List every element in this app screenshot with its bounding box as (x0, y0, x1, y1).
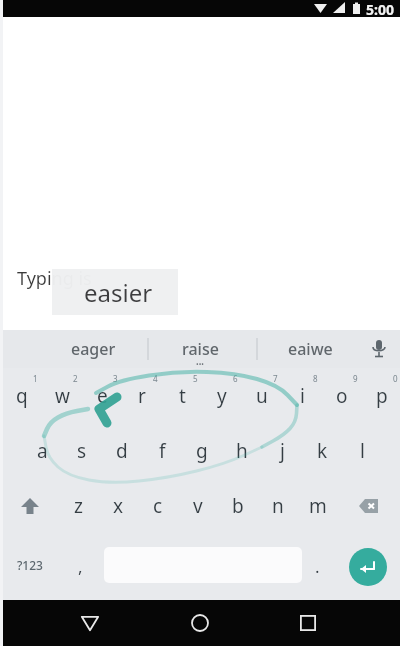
staticText: h (236, 438, 248, 464)
button[interactable]: v (178, 478, 218, 533)
staticText: 1 (33, 373, 38, 384)
staticText: n (272, 493, 284, 519)
staticText: 4 (153, 373, 158, 384)
button[interactable]: q (2, 368, 42, 423)
button[interactable] (10, 478, 50, 533)
button[interactable] (349, 548, 387, 586)
staticText: x (113, 493, 124, 519)
button[interactable]: x (98, 478, 138, 533)
button[interactable] (284, 600, 332, 646)
button[interactable]: raise (150, 330, 250, 368)
button[interactable]: b (218, 478, 258, 533)
staticText: d (116, 438, 128, 464)
button[interactable]: z (58, 478, 98, 533)
button[interactable] (369, 339, 389, 359)
staticText: 6 (233, 373, 238, 384)
staticText: f (159, 438, 166, 464)
button[interactable]: . (297, 539, 337, 594)
button[interactable]: n (258, 478, 298, 533)
button[interactable]: i (282, 368, 322, 423)
staticText: g (196, 438, 208, 464)
staticText: q (16, 383, 28, 409)
staticText: eager (71, 338, 116, 360)
staticText: 5:00 (366, 0, 394, 17)
button[interactable]: h (222, 423, 262, 478)
staticText: raise (182, 338, 219, 360)
staticText: p (376, 383, 388, 409)
button[interactable]: f (142, 423, 182, 478)
button[interactable]: s (62, 423, 102, 478)
button[interactable]: o (322, 368, 362, 423)
button[interactable]: y (202, 368, 242, 423)
button[interactable] (176, 600, 224, 646)
button[interactable]: k (302, 423, 342, 478)
button[interactable]: eaiwe (260, 330, 360, 368)
staticText: eaiwe (288, 338, 333, 360)
staticText: 2 (73, 373, 78, 384)
staticText: 9 (353, 373, 358, 384)
staticText: m (309, 493, 327, 519)
button[interactable]: p (362, 368, 400, 423)
button[interactable]: , (60, 539, 100, 594)
staticText: k (317, 438, 328, 464)
button[interactable] (347, 478, 391, 533)
staticText: s (77, 438, 87, 464)
button[interactable]: c (138, 478, 178, 533)
staticText: b (232, 493, 244, 519)
button[interactable]: w (42, 368, 82, 423)
staticText: 8 (313, 373, 318, 384)
staticText: ?123 (17, 557, 43, 573)
staticText: v (193, 493, 203, 519)
staticText: r (138, 383, 146, 409)
staticText: o (336, 383, 348, 409)
button[interactable]: m (298, 478, 338, 533)
staticText: . (315, 555, 320, 578)
staticText: Typing is (17, 266, 92, 291)
button[interactable]: e (82, 368, 122, 423)
staticText: t (179, 383, 186, 409)
button[interactable]: a (22, 423, 62, 478)
button[interactable]: r (122, 368, 162, 423)
button[interactable]: l (342, 423, 382, 478)
staticText: ••• (196, 360, 204, 370)
button[interactable]: d (102, 423, 142, 478)
button[interactable]: g (182, 423, 222, 478)
staticText: l (360, 438, 365, 464)
staticText: 5 (193, 373, 198, 384)
button[interactable]: eager (43, 330, 143, 368)
staticText: , (78, 555, 83, 578)
staticText: u (256, 383, 268, 409)
staticText: e (97, 383, 108, 409)
staticText: j (280, 438, 285, 464)
button[interactable]: j (262, 423, 302, 478)
staticText: easier (84, 276, 153, 309)
staticText: 3 (113, 373, 118, 384)
staticText: z (74, 493, 83, 519)
staticText: y (217, 383, 227, 409)
button[interactable] (66, 600, 114, 646)
staticText: 7 (273, 373, 278, 384)
staticText: 0 (393, 373, 398, 384)
button[interactable]: t (162, 368, 202, 423)
staticText: a (37, 438, 48, 464)
staticText: w (55, 383, 70, 409)
staticText: i (300, 383, 305, 409)
staticText: c (153, 493, 163, 519)
button[interactable]: ?123 (8, 537, 52, 592)
button[interactable]: u (242, 368, 282, 423)
